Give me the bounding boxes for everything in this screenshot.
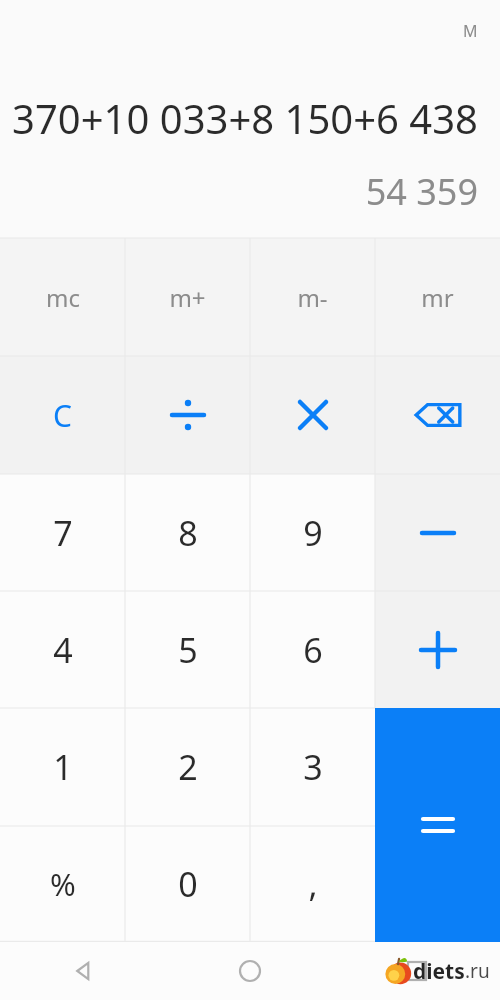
button[interactable]: 3: [250, 708, 375, 825]
staticText: 7: [53, 510, 73, 556]
button[interactable]: %: [0, 825, 125, 942]
button[interactable]: 8: [125, 474, 250, 591]
button[interactable]: m-: [250, 238, 375, 356]
staticText: ,: [308, 861, 318, 907]
staticText: M: [463, 20, 478, 42]
button[interactable]: C: [0, 356, 125, 474]
staticText: 370+10 033+8 150+6 438: [12, 91, 478, 145]
staticText: 4: [53, 627, 73, 673]
staticText: 8: [178, 510, 198, 556]
staticText: 3: [303, 744, 323, 790]
button[interactable]: 5: [125, 591, 250, 708]
button[interactable]: 1: [0, 708, 125, 825]
staticText: .ru: [465, 958, 490, 984]
staticText: 54 359: [365, 167, 478, 216]
staticText: 9: [303, 510, 323, 556]
button[interactable]: 9: [250, 474, 375, 591]
button[interactable]: Home: [166, 942, 333, 1000]
button[interactable]: mr: [375, 238, 500, 356]
button[interactable]: Divide: [125, 356, 250, 474]
staticText: C: [53, 395, 72, 436]
button[interactable]: ,: [250, 825, 375, 942]
staticText: 1: [53, 744, 73, 790]
staticText: mr: [421, 281, 454, 314]
staticText: diets: [413, 957, 465, 986]
button[interactable]: 7: [0, 474, 125, 591]
staticText: %: [50, 863, 76, 905]
button[interactable]: 4: [0, 591, 125, 708]
button[interactable]: mc: [0, 238, 125, 356]
button[interactable]: 0: [125, 825, 250, 942]
staticText: 0: [178, 861, 198, 907]
button[interactable]: Minus: [375, 474, 500, 591]
staticText: m+: [169, 281, 206, 314]
button[interactable]: Backspace: [375, 356, 500, 474]
button[interactable]: Multiply: [250, 356, 375, 474]
button[interactable]: 2: [125, 708, 250, 825]
staticText: mc: [46, 281, 80, 314]
staticText: 6: [303, 627, 323, 673]
button[interactable]: m+: [125, 238, 250, 356]
button[interactable]: Equals: [375, 708, 500, 942]
button[interactable]: Recents: [333, 942, 500, 1000]
button[interactable]: 6: [250, 591, 375, 708]
staticText: 5: [178, 627, 198, 673]
staticText: m-: [297, 281, 328, 314]
button[interactable]: Plus: [375, 591, 500, 708]
button[interactable]: Back: [0, 942, 166, 1000]
staticText: 2: [178, 744, 198, 790]
